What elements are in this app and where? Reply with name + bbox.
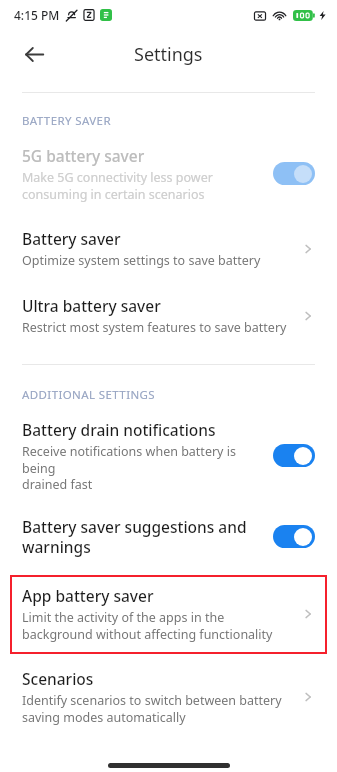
staticText: 4:15 PM: [14, 7, 60, 23]
button[interactable]: Toggle: [273, 444, 315, 467]
staticText: Battery saver suggestions and warnings: [22, 516, 247, 557]
staticText: Optimize system settings to save battery: [22, 252, 261, 269]
staticText: ADDITIONAL SETTINGS: [22, 387, 156, 403]
staticText: BATTERY SAVER: [22, 113, 111, 129]
staticText: Battery saver: [22, 228, 121, 249]
button[interactable]: Battery saver: [0, 226, 337, 271]
button[interactable]: Back: [14, 34, 54, 74]
button[interactable]: App battery saver: [10, 575, 327, 654]
staticText: Identify scenarios to switch between bat…: [22, 692, 282, 725]
staticText: Scenarios: [22, 668, 94, 689]
button[interactable]: Battery saver suggestions and warnings: [0, 514, 337, 559]
button[interactable]: Scenarios: [0, 666, 337, 727]
staticText: Restrict most system features to save ba…: [22, 319, 287, 336]
staticText: Battery drain notifications: [22, 419, 216, 440]
staticText: Make 5G connectivity less power consumin…: [22, 169, 213, 202]
button[interactable]: 5G battery saver: [0, 143, 337, 204]
staticText: App battery saver: [22, 585, 154, 606]
staticText: 5G battery saver: [22, 145, 145, 166]
button[interactable]: Ultra battery saver: [0, 293, 337, 338]
button[interactable]: Toggle: [273, 525, 315, 548]
staticText: Receive notifications when battery is be…: [22, 443, 263, 492]
button[interactable]: Battery drain notifications: [0, 417, 337, 494]
staticText: Ultra battery saver: [22, 295, 161, 316]
button[interactable]: Toggle: [273, 162, 315, 185]
staticText: Limit the activity of the apps in the ba…: [22, 609, 273, 642]
staticText: Settings: [134, 42, 203, 67]
